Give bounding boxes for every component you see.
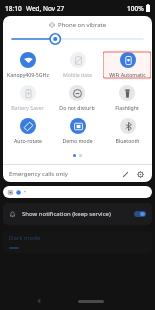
staticText: Wed, Nov 27 bbox=[26, 4, 65, 13]
staticText: Dark mode bbox=[9, 234, 41, 242]
button[interactable]: WiFi Automatic bbox=[103, 50, 151, 80]
staticText: WiFi Automatic bbox=[109, 71, 146, 78]
button[interactable]: Settings bbox=[134, 168, 146, 180]
button[interactable]: Bluetooth bbox=[103, 116, 151, 146]
button[interactable]: Home bbox=[78, 300, 104, 303]
staticText: Bluetooth bbox=[115, 137, 140, 144]
button[interactable]: Brightness bbox=[12, 34, 143, 44]
staticText: Phone on vibrate bbox=[58, 21, 107, 29]
button[interactable]: Back bbox=[32, 294, 46, 308]
staticText: • bbox=[24, 189, 26, 196]
staticText: 100% bbox=[127, 4, 144, 13]
staticText: Mobile data bbox=[63, 71, 92, 78]
button[interactable]: Dark mode bbox=[3, 231, 152, 253]
button[interactable]: Mobile data bbox=[53, 50, 101, 80]
button[interactable]: • bbox=[3, 186, 152, 198]
button[interactable]: Demo mode bbox=[53, 116, 101, 146]
staticText: Emergency calls only bbox=[9, 170, 68, 178]
button[interactable]: Kanopy409-5GHz bbox=[4, 50, 51, 80]
button[interactable]: Flashlight bbox=[103, 83, 151, 113]
staticText: Show notification (keep service) bbox=[22, 210, 111, 218]
staticText: 18:10 bbox=[5, 4, 22, 13]
staticText: Demo mode bbox=[62, 137, 93, 144]
staticText: Battery Saver bbox=[11, 104, 44, 111]
staticText: Kanopy409-5GHz bbox=[7, 71, 49, 78]
button[interactable]: Edit tiles bbox=[119, 168, 131, 180]
staticText: Do not disturb bbox=[59, 104, 95, 111]
staticText: Auto-rotate bbox=[14, 137, 42, 144]
button[interactable]: Auto-rotate bbox=[4, 116, 51, 146]
button[interactable]: Do not disturb bbox=[53, 83, 101, 113]
button[interactable]: Toggle notification bbox=[134, 211, 146, 217]
staticText: Flashlight bbox=[115, 104, 139, 111]
button[interactable]: Battery Saver bbox=[4, 83, 51, 113]
button[interactable]: Show notification (keep service) bbox=[3, 203, 152, 225]
